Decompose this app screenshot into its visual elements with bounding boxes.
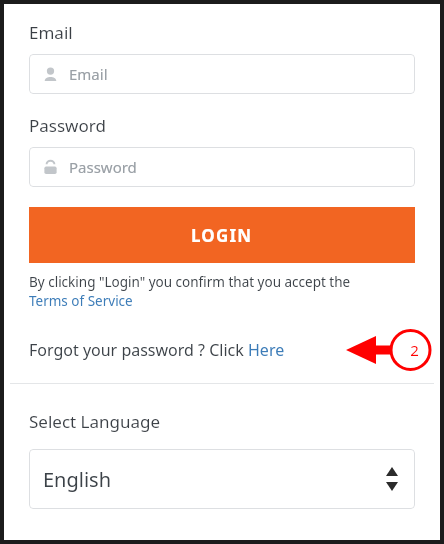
button[interactable]: Forgot your password ? Click xyxy=(29,339,285,361)
staticText: Select Language xyxy=(29,410,161,433)
staticText: Password xyxy=(29,114,106,137)
button[interactable]: English xyxy=(29,449,415,509)
button[interactable]: LOGIN xyxy=(29,207,415,263)
button[interactable]: Email xyxy=(29,54,415,94)
staticText: Email xyxy=(29,21,73,44)
staticText: English xyxy=(43,466,112,493)
button[interactable]: Terms of Service xyxy=(29,292,133,310)
button[interactable]: Password xyxy=(29,147,415,187)
other: Change language xyxy=(385,468,399,490)
staticText: 2 xyxy=(410,340,419,360)
staticText: By clicking "Login" you confirm that you… xyxy=(29,273,351,291)
staticText: Here xyxy=(248,339,285,361)
staticText: Password xyxy=(69,157,137,177)
staticText: Forgot your password ? Click xyxy=(29,339,248,361)
staticText: LOGIN xyxy=(191,224,253,247)
staticText: Email xyxy=(69,64,108,84)
